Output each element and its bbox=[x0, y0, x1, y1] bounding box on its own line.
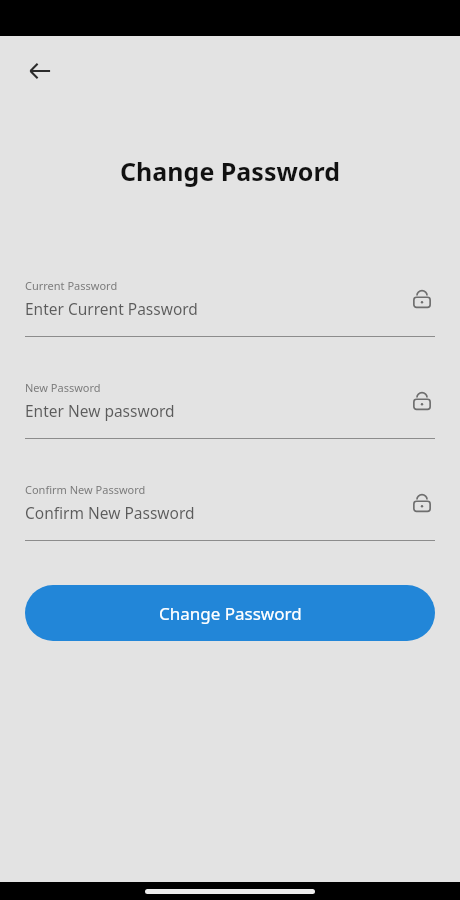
staticText: Confirm New Password bbox=[25, 482, 146, 497]
staticText: Confirm New Password bbox=[25, 502, 195, 523]
button[interactable]: Current Password bbox=[0, 278, 460, 337]
button[interactable]: New Password bbox=[0, 380, 460, 439]
staticText: Change Password bbox=[159, 602, 302, 625]
staticText: New Password bbox=[25, 380, 101, 395]
button[interactable]: Confirm New Password bbox=[0, 482, 460, 541]
button[interactable]: Change Password bbox=[25, 585, 435, 641]
staticText: Change Password bbox=[0, 154, 460, 188]
staticText: Current Password bbox=[25, 278, 118, 293]
staticText: Enter Current Password bbox=[25, 298, 198, 319]
staticText: Enter New password bbox=[25, 400, 175, 421]
button[interactable]: Back bbox=[18, 49, 62, 93]
